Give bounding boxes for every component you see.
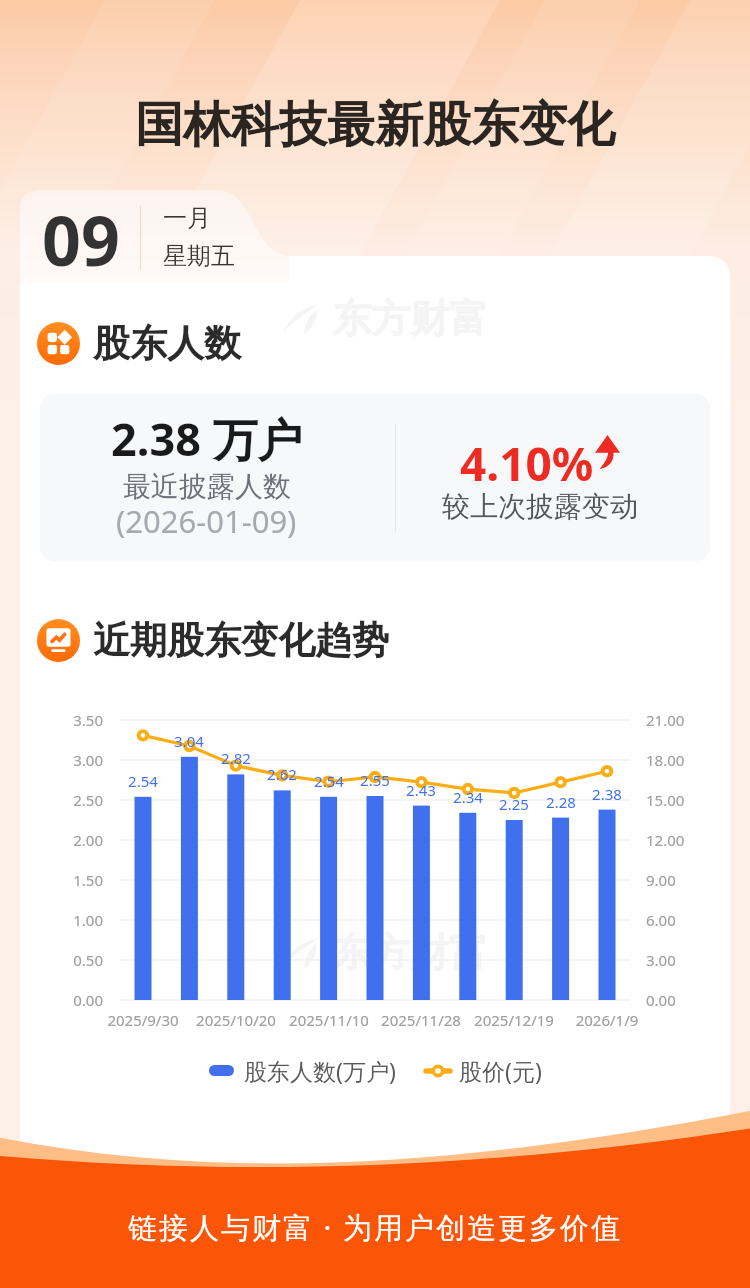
staticText: 国林科技最新股东变化 xyxy=(0,95,750,155)
staticText: 2025/11/10 xyxy=(269,1010,389,1030)
staticText: 2.25 xyxy=(484,794,544,814)
staticText: 2.82 xyxy=(206,748,266,768)
staticText: 2.34 xyxy=(438,787,498,807)
staticText: 2026/1/9 xyxy=(547,1010,667,1030)
staticText: 0.00 xyxy=(646,990,676,1010)
staticText: 3.04 xyxy=(159,731,219,751)
staticText: 2025/11/28 xyxy=(361,1010,481,1030)
staticText: 18.00 xyxy=(646,750,685,770)
staticText: 4.10% xyxy=(460,432,594,495)
staticText: 3.00 xyxy=(43,750,103,770)
staticText: 2.28 xyxy=(531,792,591,812)
staticText: 1.00 xyxy=(43,910,103,930)
staticText: 一月 xyxy=(163,203,211,233)
staticText: 近期股东变化趋势 xyxy=(93,617,389,664)
staticText: 2025/12/19 xyxy=(454,1010,574,1030)
button[interactable]: 09 xyxy=(20,190,730,283)
staticText: 12.00 xyxy=(646,830,685,850)
staticText: 2.00 xyxy=(43,830,103,850)
staticText: 3.50 xyxy=(43,710,103,730)
staticText: 股东人数 xyxy=(93,320,241,367)
staticText: 0.50 xyxy=(43,950,103,970)
staticText: 2.38 万户 xyxy=(111,408,303,469)
staticText: 星期五 xyxy=(163,241,235,271)
staticText: 9.00 xyxy=(646,870,676,890)
staticText: 东方财富 xyxy=(332,294,488,343)
staticText: 2.43 xyxy=(391,780,451,800)
staticText: 2025/10/20 xyxy=(176,1010,296,1030)
staticText: 2025/9/30 xyxy=(83,1010,203,1030)
staticText: 2.55 xyxy=(345,770,405,790)
staticText: 6.00 xyxy=(646,910,676,930)
button[interactable]: 2.38 万户 xyxy=(40,394,710,561)
staticText: 2.54 xyxy=(299,771,359,791)
staticText: 股价(元) xyxy=(459,1055,542,1086)
staticText: 东方财富 xyxy=(332,928,488,977)
staticText: 2.62 xyxy=(252,764,312,784)
staticText: 2.50 xyxy=(43,790,103,810)
staticText: 3.00 xyxy=(646,950,676,970)
staticText: 链接人与财富 · 为用户创造更多价值 xyxy=(0,1207,750,1247)
staticText: 2.38 xyxy=(577,784,637,804)
staticText: 21.00 xyxy=(646,710,685,730)
staticText: 15.00 xyxy=(646,790,685,810)
staticText: 0.00 xyxy=(43,990,103,1010)
staticText: 2.54 xyxy=(113,771,173,791)
staticText: 较上次披露变动 xyxy=(442,489,638,524)
staticText: 最近披露人数 xyxy=(123,469,291,504)
staticText: 1.50 xyxy=(43,870,103,890)
staticText: 股东人数(万户) xyxy=(244,1055,396,1086)
staticText: (2026-01-09) xyxy=(116,500,297,542)
staticText: 09 xyxy=(42,193,120,286)
